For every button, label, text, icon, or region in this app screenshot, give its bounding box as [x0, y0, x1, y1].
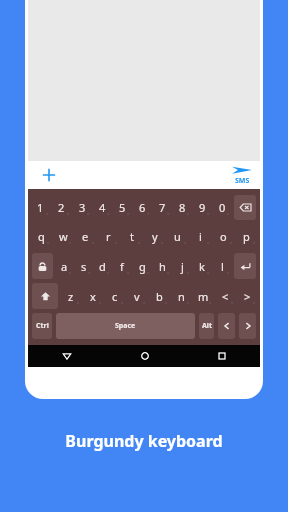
- staticText: °: [227, 212, 230, 219]
- staticText: °: [47, 241, 50, 248]
- staticText: >: [244, 289, 251, 304]
- button[interactable]: l: [213, 252, 231, 280]
- button[interactable]: t: [121, 223, 142, 250]
- staticText: °: [46, 212, 49, 219]
- staticText: °: [121, 301, 124, 308]
- staticText: Space: [115, 321, 136, 331]
- staticText: Ctrl: [36, 321, 49, 331]
- button[interactable]: 6: [133, 194, 151, 221]
- staticText: °: [147, 212, 150, 219]
- staticText: °: [207, 212, 210, 219]
- button[interactable]: 4: [93, 194, 111, 221]
- button[interactable]: Recents: [183, 345, 260, 367]
- button[interactable]: w: [53, 223, 73, 250]
- button[interactable]: x: [83, 282, 103, 310]
- staticText: °: [231, 301, 234, 308]
- button[interactable]: Add attachment: [38, 164, 60, 186]
- button[interactable]: n: [171, 282, 191, 310]
- staticText: Burgundy keyboard: [65, 430, 223, 452]
- staticText: x: [90, 289, 96, 304]
- staticText: <: [222, 289, 229, 304]
- button[interactable]: shift: [32, 283, 58, 309]
- staticText: r: [106, 229, 111, 244]
- staticText: °: [92, 241, 95, 248]
- button[interactable]: Send SMS: [232, 165, 252, 186]
- button[interactable]: f: [113, 252, 131, 280]
- staticText: °: [127, 212, 130, 219]
- button[interactable]: r: [98, 223, 119, 250]
- staticText: °: [207, 271, 210, 278]
- button[interactable]: backspace: [234, 195, 256, 220]
- staticText: °: [127, 271, 130, 278]
- staticText: 0: [219, 200, 226, 215]
- staticText: SMS: [235, 176, 250, 186]
- staticText: 5: [119, 200, 126, 215]
- button[interactable]: d: [94, 252, 111, 280]
- staticText: 9: [199, 200, 206, 215]
- staticText: °: [99, 301, 102, 308]
- button[interactable]: j: [173, 252, 191, 280]
- button[interactable]: a: [56, 252, 73, 280]
- button[interactable]: v: [127, 282, 147, 310]
- staticText: c: [112, 289, 118, 304]
- button[interactable]: 2: [52, 194, 71, 221]
- button[interactable]: Alt: [199, 313, 214, 339]
- button[interactable]: i: [190, 223, 211, 250]
- button[interactable]: 0: [213, 194, 231, 221]
- staticText: g: [139, 259, 146, 274]
- staticText: w: [59, 229, 68, 244]
- button[interactable]: <: [215, 282, 235, 310]
- button[interactable]: h: [153, 252, 171, 280]
- button[interactable]: lock: [32, 253, 53, 279]
- button[interactable]: 9: [193, 194, 211, 221]
- staticText: z: [68, 289, 74, 304]
- staticText: m: [198, 289, 209, 304]
- button[interactable]: o: [213, 223, 234, 250]
- button[interactable]: m: [193, 282, 213, 310]
- staticText: °: [230, 241, 233, 248]
- button[interactable]: enter: [234, 253, 256, 279]
- button[interactable]: Home: [106, 345, 183, 367]
- staticText: 1: [37, 200, 44, 215]
- staticText: °: [167, 271, 170, 278]
- staticText: °: [67, 212, 70, 219]
- staticText: v: [134, 289, 140, 304]
- button[interactable]: Ctrl: [32, 313, 52, 339]
- button[interactable]: u: [167, 223, 188, 250]
- button[interactable]: q: [31, 223, 51, 250]
- button[interactable]: 8: [173, 194, 191, 221]
- button[interactable]: k: [193, 252, 211, 280]
- staticText: °: [187, 212, 190, 219]
- staticText: °: [87, 212, 90, 219]
- button[interactable]: >: [237, 282, 257, 310]
- button[interactable]: y: [144, 223, 165, 250]
- button[interactable]: Space: [56, 313, 195, 339]
- button[interactable]: Right: [239, 313, 256, 339]
- button[interactable]: c: [105, 282, 125, 310]
- button[interactable]: z: [61, 282, 81, 310]
- button[interactable]: 1: [31, 194, 50, 221]
- staticText: u: [174, 229, 181, 244]
- staticText: b: [156, 289, 163, 304]
- staticText: °: [138, 241, 141, 248]
- staticText: a: [61, 259, 68, 274]
- button[interactable]: Back: [28, 345, 106, 367]
- staticText: l: [221, 259, 224, 274]
- staticText: °: [69, 241, 72, 248]
- staticText: °: [77, 301, 80, 308]
- button[interactable]: 7: [153, 194, 171, 221]
- button[interactable]: g: [133, 252, 151, 280]
- button[interactable]: p: [236, 223, 257, 250]
- button[interactable]: e: [75, 223, 96, 250]
- staticText: °: [184, 241, 187, 248]
- button[interactable]: Left: [218, 313, 235, 339]
- staticText: e: [82, 229, 89, 244]
- button[interactable]: 5: [113, 194, 131, 221]
- staticText: °: [187, 301, 190, 308]
- button[interactable]: 3: [73, 194, 91, 221]
- button[interactable]: s: [75, 252, 92, 280]
- staticText: t: [130, 229, 134, 244]
- staticText: h: [159, 259, 166, 274]
- staticText: f: [120, 259, 124, 274]
- button[interactable]: b: [149, 282, 169, 310]
